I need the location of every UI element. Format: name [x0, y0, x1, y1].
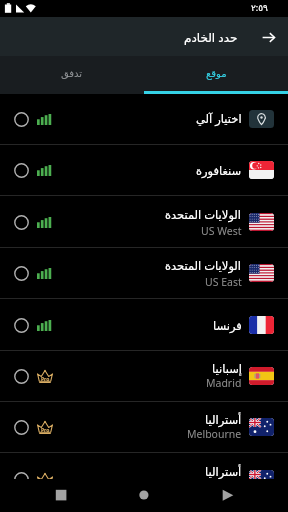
button[interactable]: Pro: [0, 402, 288, 452]
staticText: ٢:٥٩: [251, 1, 268, 13]
staticText: Pro: [41, 376, 50, 383]
staticText: Pro: [41, 427, 50, 434]
button[interactable]: Back: [252, 18, 284, 56]
staticText: سنغافورة: [196, 164, 242, 177]
button[interactable]: الولايات المتحدة: [0, 248, 288, 298]
staticText: Melbourne: [187, 427, 242, 441]
button[interactable]: الولايات المتحدة: [0, 197, 288, 247]
staticText: اختيار آلي: [196, 111, 242, 127]
button[interactable]: اختيار آلي: [0, 94, 288, 144]
button[interactable]: موقع: [144, 56, 288, 94]
staticText: Madrid: [206, 376, 242, 390]
button[interactable]: Recents, Home, Back: [0, 479, 288, 512]
staticText: فرنسا: [213, 319, 242, 332]
staticText: US East: [205, 275, 242, 289]
button[interactable]: فرنسا: [0, 300, 288, 350]
button[interactable]: سنغافورة: [0, 145, 288, 195]
button[interactable]: Pro: [0, 454, 288, 504]
staticText: Sydney: [206, 479, 242, 493]
staticText: أستراليا: [205, 413, 242, 426]
button[interactable]: تدفق: [0, 56, 144, 94]
staticText: موقع: [206, 68, 227, 80]
staticText: إسبانيا: [212, 362, 242, 375]
staticText: تدفق: [61, 68, 83, 80]
staticText: أستراليا: [205, 465, 242, 478]
staticText: الولايات المتحدة: [165, 207, 242, 223]
button[interactable]: Pro: [0, 351, 288, 401]
staticText: الولايات المتحدة: [165, 258, 242, 274]
staticText: حدد الخادم: [184, 29, 238, 45]
staticText: US West: [201, 224, 242, 238]
